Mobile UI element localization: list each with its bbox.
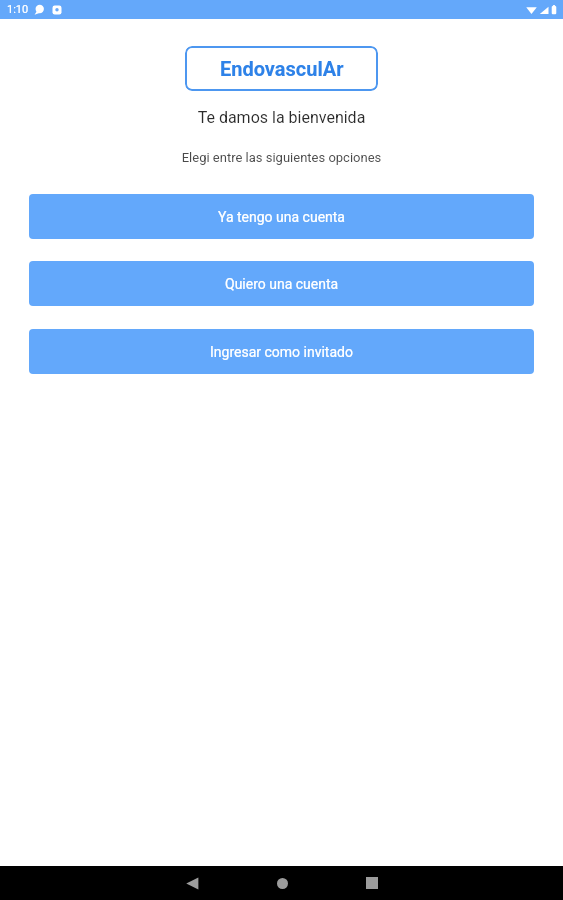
staticText: 1:10 — [7, 3, 29, 16]
button[interactable]: Home — [259, 866, 305, 900]
staticText: Elegi entre las siguientes opciones — [0, 150, 563, 165]
button[interactable]: Back — [169, 866, 215, 900]
button[interactable]: Ya tengo una cuenta — [29, 194, 534, 239]
button[interactable]: Quiero una cuenta — [29, 261, 534, 306]
staticText: Ya tengo una cuenta — [218, 209, 345, 225]
staticText: Ingresar como invitado — [210, 344, 353, 360]
staticText: EndovasculAr — [220, 57, 344, 80]
staticText: Te damos la bienvenida — [0, 108, 563, 127]
button[interactable]: Ingresar como invitado — [29, 329, 534, 374]
button[interactable]: Recents — [349, 866, 395, 900]
button[interactable]: EndovasculAr — [185, 46, 378, 91]
staticText: Quiero una cuenta — [225, 276, 339, 292]
